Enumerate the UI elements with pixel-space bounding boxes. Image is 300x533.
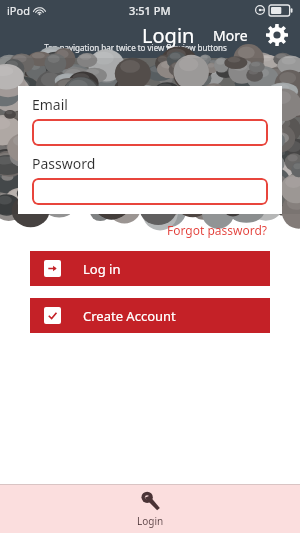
staticText: Create Account bbox=[83, 307, 176, 325]
staticText: 3:51 PM bbox=[129, 3, 171, 18]
button[interactable]: Forgot password? bbox=[167, 222, 268, 238]
staticText: iPod bbox=[7, 3, 30, 18]
staticText: Login bbox=[142, 22, 195, 49]
button[interactable]: More bbox=[213, 26, 248, 45]
staticText: Tap navigation bar twice to view Preview… bbox=[44, 42, 227, 53]
staticText: Email bbox=[32, 95, 68, 114]
button[interactable]: Email field bbox=[32, 119, 268, 146]
staticText: Log in bbox=[83, 260, 121, 278]
staticText: Password bbox=[32, 154, 96, 173]
button[interactable]: Login bbox=[0, 485, 300, 533]
button[interactable]: Log in bbox=[30, 251, 270, 286]
staticText: Forgot password? bbox=[167, 222, 268, 238]
button[interactable]: Settings bbox=[262, 20, 292, 50]
other: Login bbox=[140, 491, 161, 512]
button[interactable]: Create Account bbox=[30, 298, 270, 333]
staticText: Login bbox=[137, 514, 164, 528]
staticText: More bbox=[213, 26, 248, 45]
button[interactable]: Password field bbox=[32, 178, 268, 205]
